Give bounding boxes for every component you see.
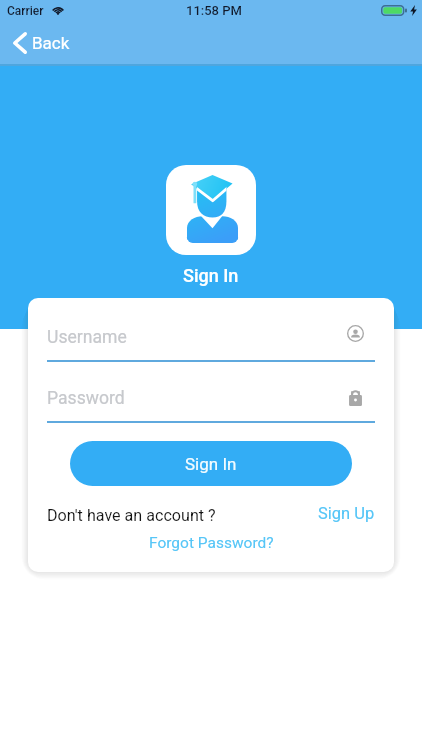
button[interactable]: Sign Up [318, 506, 375, 525]
other: Username [347, 325, 364, 342]
button[interactable]: Forgot Password? [149, 534, 274, 552]
other: Battery charging [381, 5, 407, 16]
staticText: Sign In [185, 454, 237, 474]
other: Password [347, 389, 364, 406]
button[interactable]: Back [0, 24, 80, 64]
button[interactable]: Sign In [70, 441, 352, 486]
staticText: 11:58 PM [186, 3, 242, 18]
staticText: Password [47, 388, 347, 409]
staticText: Carrier [7, 4, 44, 18]
staticText: Don't have an account ? [47, 506, 216, 525]
staticText: Username [47, 327, 347, 348]
staticText: Sign Up [318, 504, 375, 523]
staticText: Forgot Password? [149, 534, 274, 552]
staticText: Sign In [183, 265, 239, 286]
staticText: Back [32, 33, 70, 53]
